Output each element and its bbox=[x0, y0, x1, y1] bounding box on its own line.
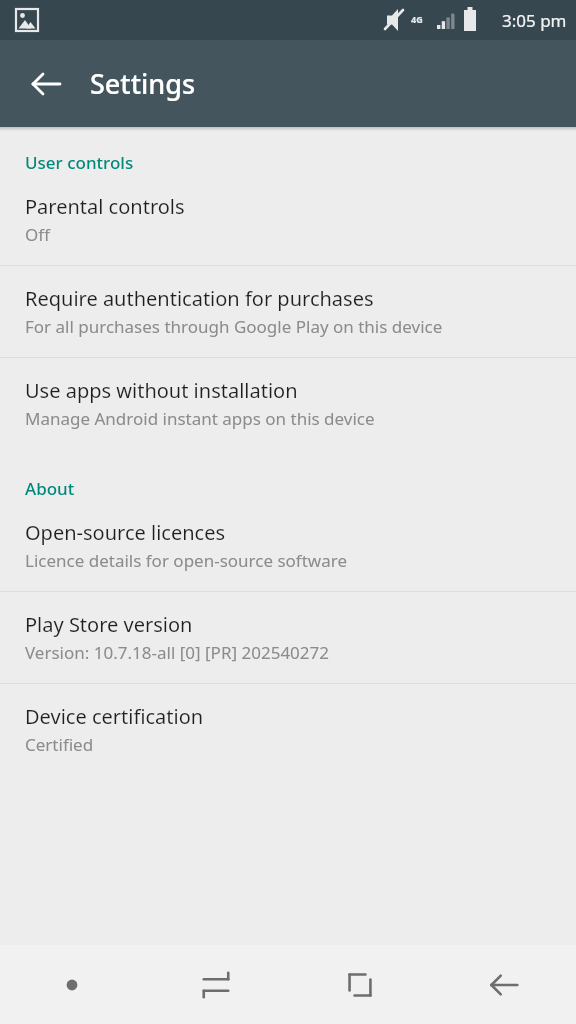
staticText: 3:05 pm bbox=[502, 9, 567, 32]
staticText: Certified bbox=[25, 733, 94, 756]
button[interactable]: Back bbox=[10, 48, 82, 120]
staticText: Open-source licences bbox=[25, 519, 225, 546]
staticText: Settings bbox=[90, 65, 196, 102]
staticText: Parental controls bbox=[25, 193, 185, 220]
button[interactable]: Recent apps bbox=[144, 945, 288, 1024]
staticText: Manage Android instant apps on this devi… bbox=[25, 407, 375, 430]
staticText: 4G bbox=[411, 13, 423, 25]
staticText: Version: 10.7.18-all [0] [PR] 202540272 bbox=[25, 641, 330, 664]
button[interactable]: More options bbox=[0, 945, 144, 1024]
button[interactable]: Back bbox=[432, 945, 576, 1024]
button[interactable]: Play Store version bbox=[0, 592, 576, 683]
staticText: Device certification bbox=[25, 703, 204, 730]
button[interactable]: Device certification bbox=[0, 684, 576, 775]
staticText: User controls bbox=[25, 151, 134, 174]
button[interactable]: Open-source licences bbox=[0, 500, 576, 591]
button[interactable]: Require authentication for purchases bbox=[0, 266, 576, 357]
button[interactable]: Parental controls bbox=[0, 174, 576, 265]
staticText: Use apps without installation bbox=[25, 377, 298, 404]
staticText: For all purchases through Google Play on… bbox=[25, 315, 443, 338]
button[interactable]: Home bbox=[288, 945, 432, 1024]
staticText: About bbox=[25, 477, 75, 500]
staticText: Off bbox=[25, 223, 50, 246]
button[interactable]: Use apps without installation bbox=[0, 358, 576, 449]
staticText: Require authentication for purchases bbox=[25, 285, 374, 312]
staticText: Licence details for open-source software bbox=[25, 549, 348, 572]
staticText: Play Store version bbox=[25, 611, 193, 638]
